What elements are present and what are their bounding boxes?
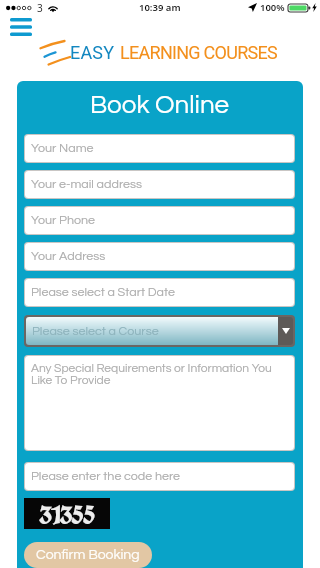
button[interactable]: Your Name bbox=[25, 135, 294, 162]
button[interactable]: Open navigation menu bbox=[4, 12, 38, 41]
staticText: EASY bbox=[70, 42, 115, 63]
staticText: 100% bbox=[260, 1, 285, 14]
button[interactable]: Please select a Course bbox=[24, 315, 295, 347]
staticText: Please enter the code here bbox=[31, 470, 181, 483]
staticText: Confirm Booking bbox=[36, 548, 140, 562]
button[interactable]: Any Special Requirements or Information … bbox=[25, 356, 294, 450]
button[interactable]: Please enter the code here bbox=[25, 463, 294, 490]
staticText: 31355 bbox=[39, 497, 95, 528]
button[interactable]: Your Phone bbox=[25, 207, 294, 234]
staticText: 3 bbox=[37, 1, 43, 15]
staticText: 10:39 am bbox=[139, 1, 181, 14]
staticText: Any Special Requirements or Information … bbox=[31, 362, 289, 386]
staticText: Your Name bbox=[31, 142, 94, 155]
staticText: Your Phone bbox=[31, 214, 96, 227]
staticText: LEARNING COURSES bbox=[120, 42, 278, 63]
staticText: Book Online bbox=[24, 92, 295, 119]
button[interactable]: Your Address bbox=[25, 243, 294, 270]
staticText: Your Address bbox=[31, 250, 106, 263]
staticText: Please select a Course bbox=[32, 325, 159, 338]
button[interactable]: Your e-mail address bbox=[25, 171, 294, 198]
button[interactable]: Please select a Start Date bbox=[25, 279, 294, 306]
staticText: Please select a Start Date bbox=[31, 286, 175, 299]
button[interactable]: Confirm Booking bbox=[24, 542, 152, 568]
staticText: Your e-mail address bbox=[31, 178, 143, 191]
